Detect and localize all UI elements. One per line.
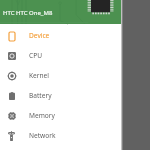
- button[interactable]: CPU: [0, 46, 121, 66]
- button[interactable]: Network: [0, 126, 121, 146]
- staticText: Device: [29, 31, 50, 40]
- staticText: Memory: [29, 111, 55, 120]
- button[interactable]: Device: [0, 26, 121, 46]
- button[interactable]: Battery: [0, 86, 121, 106]
- staticText: Kernel: [29, 71, 50, 80]
- staticText: HTC HTC One_M8: [3, 9, 53, 17]
- staticText: CPU: [29, 51, 42, 60]
- staticText: Battery: [29, 91, 52, 100]
- button[interactable]: Kernel: [0, 66, 121, 86]
- button[interactable]: Memory: [0, 106, 121, 126]
- staticText: Network: [29, 131, 56, 140]
